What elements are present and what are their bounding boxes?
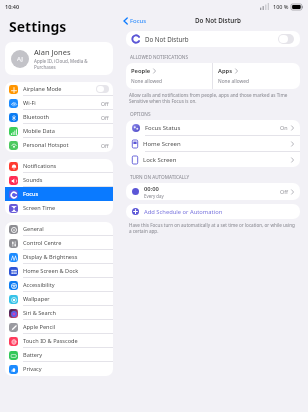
button[interactable]: Bluetooth — [5, 110, 113, 124]
staticText: Focus — [130, 17, 147, 25]
staticText: 00:00 — [144, 185, 159, 193]
staticText: Display & Brightness — [23, 253, 78, 261]
staticText: TURN ON AUTOMATICALLY — [130, 174, 190, 180]
staticText: Off — [101, 100, 109, 107]
button[interactable]: Display & Brightness — [5, 250, 113, 264]
staticText: Apps — [218, 67, 233, 75]
button[interactable]: Sounds — [5, 173, 113, 187]
button[interactable]: Mobile Data — [5, 124, 113, 138]
staticText: Sounds — [23, 176, 43, 184]
staticText: AJ — [17, 55, 23, 63]
staticText: Settings — [9, 17, 67, 36]
staticText: Wi-Fi — [23, 99, 36, 107]
staticText: Control Centre — [23, 239, 62, 247]
button[interactable]: Wi-Fi — [5, 96, 113, 110]
staticText: On — [280, 124, 288, 131]
button[interactable]: Focus — [122, 16, 148, 26]
button[interactable]: Home Screen & Dock — [5, 264, 113, 278]
staticText: 10:40 — [5, 3, 20, 10]
button[interactable]: Airplane Mode — [5, 82, 113, 96]
staticText: Wallpaper — [23, 295, 50, 303]
staticText: Have this Focus turn on automatically at… — [129, 222, 297, 234]
staticText: Do Not Disturb — [195, 16, 241, 25]
staticText: Alan Jones — [34, 47, 71, 57]
staticText: Touch ID & Passcode — [23, 337, 78, 345]
staticText: Apple ID, iCloud, Media & Purchases — [34, 58, 107, 70]
staticText: Apple Pencil — [23, 323, 56, 331]
staticText: Privacy — [23, 365, 42, 373]
button[interactable]: Apps — [213, 63, 300, 89]
staticText: Home Screen & Dock — [23, 267, 79, 275]
button[interactable]: Apple Pencil — [5, 320, 113, 334]
button[interactable]: Home Screen — [126, 136, 300, 151]
button[interactable]: Siri & Search — [5, 306, 113, 320]
staticText: OPTIONS — [130, 111, 151, 117]
staticText: Battery — [23, 351, 43, 359]
staticText: Accessibility — [23, 281, 55, 289]
button[interactable]: Toggle — [278, 34, 294, 44]
button[interactable]: Screen Time — [5, 201, 113, 215]
button[interactable]: Focus Status — [126, 120, 300, 135]
staticText: Every day — [144, 193, 164, 199]
staticText: Do Not Disturb — [145, 35, 189, 43]
button[interactable]: Focus — [5, 187, 113, 201]
button[interactable]: People — [126, 63, 212, 89]
staticText: None allowed — [131, 78, 162, 85]
button[interactable]: Wallpaper — [5, 292, 113, 306]
staticText: 100 % — [273, 3, 289, 10]
staticText: Mobile Data — [23, 127, 55, 135]
staticText: Off — [280, 188, 288, 195]
button[interactable]: AJ — [5, 42, 113, 75]
staticText: Lock Screen — [143, 156, 177, 164]
button[interactable]: Personal Hotspot — [5, 138, 113, 152]
button[interactable]: Battery — [5, 348, 113, 362]
staticText: Personal Hotspot — [23, 141, 69, 149]
button[interactable]: Toggle — [96, 85, 109, 93]
button[interactable]: Lock Screen — [126, 152, 300, 167]
staticText: General — [23, 225, 44, 233]
button[interactable]: Do Not Disturb — [126, 31, 300, 47]
staticText: Bluetooth — [23, 113, 49, 121]
staticText: Focus Status — [145, 124, 181, 132]
staticText: People — [131, 67, 151, 75]
staticText: None allowed — [218, 78, 249, 85]
staticText: Home Screen — [143, 140, 181, 148]
staticText: Off — [101, 114, 109, 121]
staticText: Add Schedule or Automation — [144, 208, 223, 216]
staticText: Screen Time — [23, 204, 56, 212]
staticText: ALLOWED NOTIFICATIONS — [130, 54, 188, 60]
staticText: Off — [101, 142, 109, 149]
button[interactable]: Control Centre — [5, 236, 113, 250]
staticText: Allow calls and notifications from peopl… — [129, 92, 297, 104]
button[interactable]: Accessibility — [5, 278, 113, 292]
button[interactable]: Privacy — [5, 362, 113, 376]
button[interactable]: Add Schedule or Automation — [126, 204, 300, 219]
staticText: Notifications — [23, 162, 57, 170]
staticText: Focus — [23, 190, 39, 198]
button[interactable]: 00:00 — [126, 183, 300, 200]
button[interactable]: Notifications — [5, 159, 113, 173]
button[interactable]: Touch ID & Passcode — [5, 334, 113, 348]
staticText: Siri & Search — [23, 309, 56, 317]
button[interactable]: General — [5, 222, 113, 236]
staticText: Airplane Mode — [23, 85, 62, 93]
